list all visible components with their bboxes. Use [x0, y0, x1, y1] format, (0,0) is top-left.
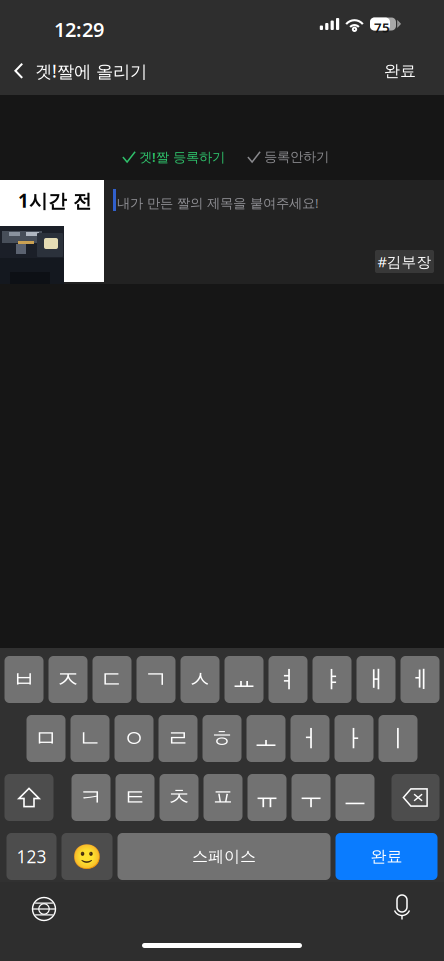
staticText: 🙂 — [72, 843, 102, 870]
button[interactable]: ㅗ — [246, 715, 285, 762]
button[interactable]: Change keyboard — [32, 897, 56, 921]
button[interactable]: ㅋ — [71, 774, 110, 821]
staticText: 겟!짤에 올리기 — [35, 59, 147, 82]
staticText: ㅕ — [276, 665, 300, 694]
button[interactable]: ㅅ — [180, 656, 219, 703]
button[interactable]: Delete — [391, 774, 439, 821]
staticText: ㄱ — [144, 665, 168, 694]
staticText: 겟!짤 등록하기 — [139, 148, 225, 166]
staticText: ㅎ — [210, 724, 234, 753]
staticText: 내가 만든 짤의 제목을 붙여주세요! — [117, 194, 319, 212]
staticText: ㅗ — [254, 724, 278, 753]
staticText: 123 — [16, 845, 46, 868]
staticText: ㅋ — [79, 783, 103, 812]
staticText: ㅊ — [167, 783, 191, 812]
button[interactable]: 완료 — [335, 833, 437, 880]
button[interactable]: ㅛ — [224, 656, 263, 703]
button[interactable]: ㅔ — [400, 656, 439, 703]
staticText: ㅂ — [12, 665, 36, 694]
button[interactable]: 겟!짤 등록하기 — [122, 148, 225, 166]
staticText: ㅑ — [320, 665, 344, 694]
button[interactable]: ㅣ — [378, 715, 417, 762]
button[interactable]: ㅍ — [203, 774, 242, 821]
staticText: ㅏ — [342, 724, 366, 753]
button[interactable]: ㅊ — [159, 774, 198, 821]
button[interactable]: 123 — [6, 833, 56, 880]
staticText: ㅡ — [343, 783, 367, 812]
button[interactable]: 등록안하기 — [247, 149, 329, 165]
staticText: ㄴ — [78, 724, 102, 753]
button[interactable]: ㄷ — [92, 656, 131, 703]
staticText: ㅠ — [255, 783, 279, 812]
button[interactable]: ㅈ — [48, 656, 87, 703]
button[interactable]: ㅂ — [4, 656, 43, 703]
staticText: ㅓ — [298, 724, 322, 753]
button[interactable]: ㅐ — [356, 656, 395, 703]
button[interactable]: Dictation — [390, 895, 414, 921]
staticText: ㅍ — [211, 783, 235, 812]
button[interactable]: ㅡ — [335, 774, 374, 821]
button[interactable]: ㄴ — [70, 715, 109, 762]
staticText: 1시간 전 — [18, 188, 92, 213]
button[interactable]: 완료 — [372, 47, 428, 95]
staticText: ㅈ — [56, 665, 80, 694]
button[interactable]: Back — [0, 47, 157, 95]
staticText: ㅇ — [122, 724, 146, 753]
staticText: ㅅ — [188, 665, 212, 694]
staticText: 12:29 — [54, 16, 104, 43]
staticText: ㅌ — [123, 783, 147, 812]
staticText: 완료 — [370, 847, 402, 866]
button[interactable]: ㄱ — [136, 656, 175, 703]
staticText: ㅛ — [232, 665, 256, 694]
staticText: ㅜ — [299, 783, 323, 812]
staticText: 75 — [374, 18, 390, 36]
staticText: #김부장 — [377, 252, 431, 271]
button[interactable]: ㅁ — [26, 715, 65, 762]
button[interactable]: ㅌ — [115, 774, 154, 821]
button[interactable]: 스페이스 — [117, 833, 330, 880]
staticText: 스페이스 — [192, 847, 256, 866]
button[interactable]: ㅑ — [312, 656, 351, 703]
staticText: 완료 — [384, 61, 416, 81]
button[interactable]: ㅓ — [290, 715, 329, 762]
button[interactable]: Shift — [4, 774, 53, 821]
button[interactable]: ㄹ — [158, 715, 197, 762]
staticText: ㅐ — [364, 665, 388, 694]
staticText: 등록안하기 — [264, 149, 329, 165]
button[interactable]: ㅎ — [202, 715, 241, 762]
staticText: ㄷ — [100, 665, 124, 694]
button[interactable]: ㅠ — [247, 774, 286, 821]
button[interactable]: ㅏ — [334, 715, 373, 762]
button[interactable]: 🙂 — [61, 833, 112, 880]
button[interactable]: ㅇ — [114, 715, 153, 762]
staticText: ㅔ — [408, 665, 432, 694]
staticText: ㅁ — [34, 724, 58, 753]
button[interactable]: ㅜ — [291, 774, 330, 821]
staticText: ㅣ — [386, 724, 410, 753]
staticText: ㄹ — [166, 724, 190, 753]
button[interactable]: ㅕ — [268, 656, 307, 703]
